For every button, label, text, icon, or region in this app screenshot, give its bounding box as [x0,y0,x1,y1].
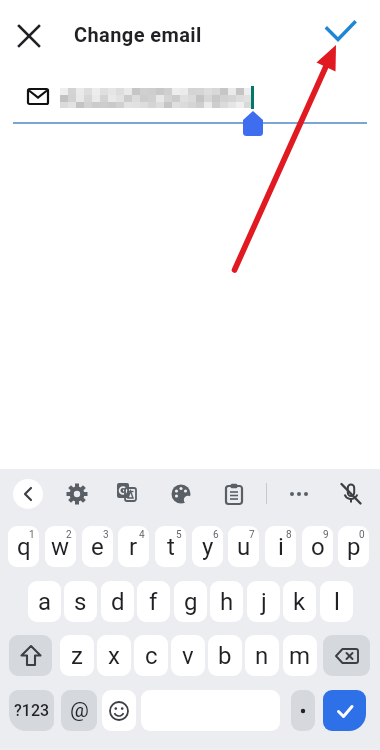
button[interactable]: w [45,526,76,567]
button[interactable]: q [8,526,39,567]
button[interactable]: g [174,581,207,622]
staticText: r [129,533,138,561]
staticText: b [218,642,232,670]
staticText: u [237,533,251,561]
button[interactable]: y [192,526,223,567]
button[interactable]: d [101,581,134,622]
button[interactable]: m [283,635,317,676]
button[interactable]: s [64,581,97,622]
staticText: q [17,533,31,561]
staticText: n [255,642,269,670]
staticText: g [184,588,198,616]
button[interactable] [65,482,89,506]
button[interactable]: c [134,635,168,676]
button[interactable]: u [228,526,259,567]
button[interactable] [323,690,366,731]
button[interactable]: x [97,635,131,676]
staticText: 7 [249,529,255,541]
staticText: Change email [74,23,202,46]
button[interactable]: f [137,581,170,622]
staticText: 6 [213,529,219,541]
staticText: 1 [29,529,35,541]
staticText: h [220,588,234,616]
staticText: x [108,642,120,670]
button[interactable] [13,479,43,509]
button[interactable]: z [60,635,94,676]
button[interactable] [9,635,52,676]
staticText: z [71,642,83,670]
staticText: 4 [139,529,145,541]
button[interactable] [287,482,311,506]
staticText: e [91,533,104,561]
staticText: v [182,642,194,670]
button[interactable]: n [245,635,279,676]
staticText: s [74,588,87,616]
button[interactable]: ?123 [9,690,54,731]
staticText: i [278,533,284,561]
button[interactable]: i [265,526,296,567]
button[interactable] [114,481,138,505]
button[interactable]: @ [61,690,97,731]
staticText: d [111,588,125,616]
button[interactable] [291,690,315,731]
button[interactable] [102,690,136,731]
staticText: w [51,533,70,561]
staticText: k [293,588,306,616]
button[interactable]: j [247,581,280,622]
staticText: 5 [176,529,182,541]
staticText: 8 [286,529,292,541]
button[interactable]: v [171,635,205,676]
button[interactable]: p [338,526,369,567]
staticText: 9 [323,529,329,541]
staticText: c [145,642,158,670]
staticText: p [347,533,361,561]
button[interactable]: b [208,635,242,676]
button[interactable]: e [82,526,113,567]
button[interactable]: l [320,581,353,622]
button[interactable]: t [155,526,186,567]
staticText: t [167,533,175,561]
staticText: @ [70,698,89,723]
staticText: 2 [66,529,72,541]
button[interactable]: r [118,526,149,567]
button[interactable]: o [302,526,333,567]
button[interactable]: a [28,581,61,622]
staticText: j [261,588,267,616]
staticText: l [334,588,340,616]
button[interactable] [9,16,49,56]
button[interactable] [339,482,363,506]
staticText: y [202,533,214,561]
staticText: m [289,642,311,670]
button[interactable] [317,9,363,55]
button[interactable] [222,483,246,507]
staticText: 3 [103,529,109,541]
button[interactable]: h [210,581,243,622]
button[interactable] [323,635,370,676]
staticText: a [38,588,52,616]
staticText: ?123 [14,701,50,720]
button[interactable] [169,482,193,506]
staticText: 0 [359,529,365,541]
staticText: f [149,588,158,616]
staticText: o [311,533,325,561]
button[interactable]: k [283,581,316,622]
